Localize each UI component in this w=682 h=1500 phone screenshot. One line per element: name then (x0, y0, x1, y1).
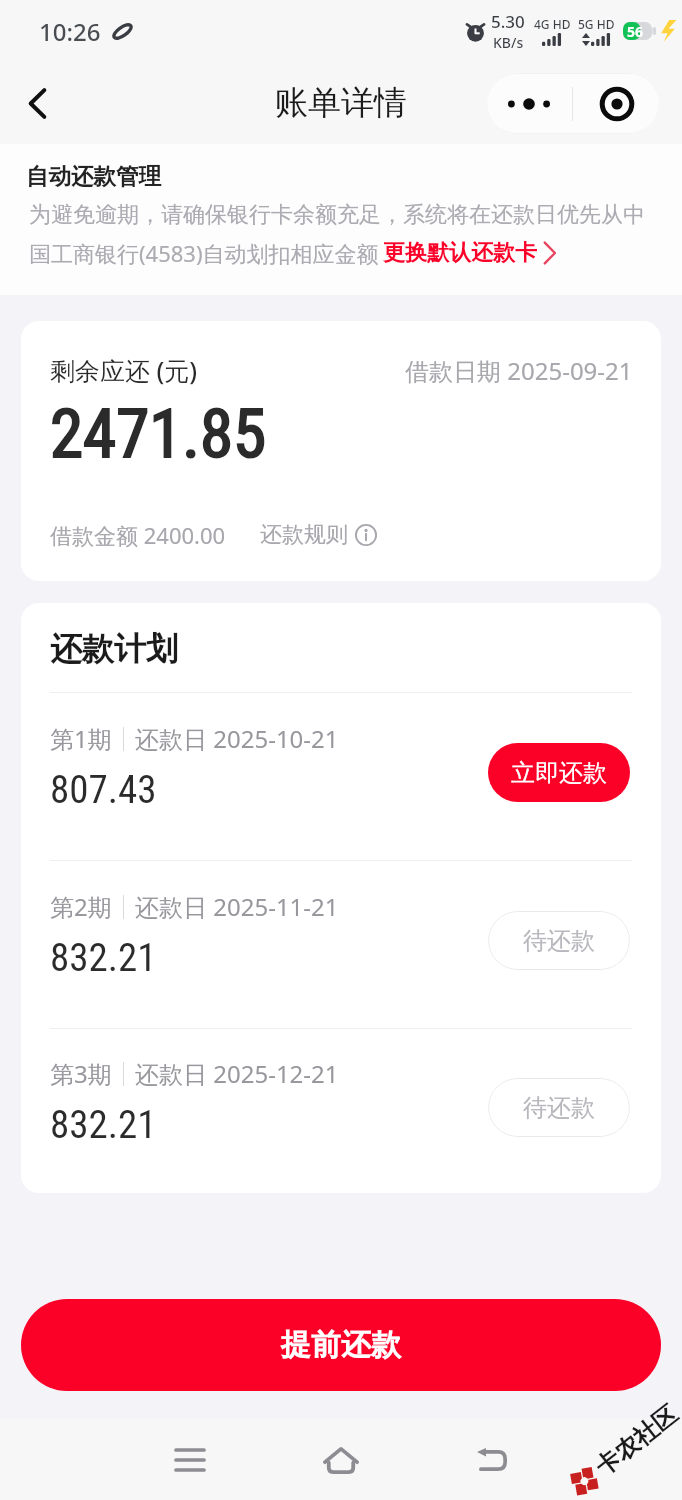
button[interactable]: 主页 (303, 1422, 379, 1498)
staticText: 807.43 (50, 767, 157, 813)
button[interactable]: 待还款 (488, 1078, 630, 1137)
button[interactable]: 更多 (486, 73, 572, 134)
staticText: 立即还款 (511, 758, 607, 788)
staticText: 还款日 2025-11-21 (135, 890, 339, 923)
staticText: 832.21 (50, 935, 157, 981)
staticText: 2471.85 (50, 395, 267, 474)
button[interactable]: 返回 (454, 1422, 530, 1498)
staticText: 借款日期 2025-09-21 (405, 354, 633, 387)
button[interactable]: 待还款 (488, 911, 630, 970)
staticText: 提前还款 (281, 1326, 401, 1364)
staticText: 5G HD (578, 16, 615, 32)
staticText: 待还款 (523, 926, 595, 956)
staticText: 卡农社区 (589, 1399, 682, 1482)
staticText: 第3期 (50, 1057, 112, 1090)
staticText: 第1期 (50, 722, 112, 755)
staticText: 56 (627, 22, 644, 40)
staticText: 还款计划 (50, 629, 178, 669)
staticText: 还款日 2025-12-21 (135, 1057, 339, 1090)
button[interactable]: 立即还款 (488, 743, 630, 802)
staticText: 第2期 (50, 890, 112, 923)
button[interactable]: 返回 (9, 75, 65, 131)
staticText: 832.21 (50, 1102, 157, 1148)
staticText: 更换默认还款卡 (383, 239, 537, 267)
button[interactable]: 关闭 (573, 73, 660, 134)
staticText: 还款规则 (260, 521, 348, 549)
button[interactable]: 提前还款 (21, 1299, 661, 1391)
staticText: 10:26 (39, 15, 101, 48)
button[interactable]: 最近任务 (152, 1422, 228, 1498)
staticText: 剩余应还 (元) (50, 353, 198, 387)
staticText: 借款金额 2400.00 (50, 520, 226, 550)
staticText: 4G HD (534, 16, 571, 32)
staticText: 5.30 (491, 10, 525, 33)
staticText: 待还款 (523, 1093, 595, 1123)
button[interactable]: 更换默认还款卡 (383, 239, 558, 267)
staticText: 自动还款管理 (26, 162, 161, 190)
staticText: 还款日 2025-10-21 (135, 722, 339, 755)
staticText: 国工商银行(4583)自动划扣相应金额 (29, 238, 379, 268)
staticText: 为避免逾期，请确保银行卡余额充足，系统将在还款日优先从中 (29, 201, 645, 229)
button[interactable]: 还款规则 (260, 521, 377, 549)
staticText: 账单详情 (275, 82, 407, 124)
staticText: KB/s (493, 33, 524, 52)
